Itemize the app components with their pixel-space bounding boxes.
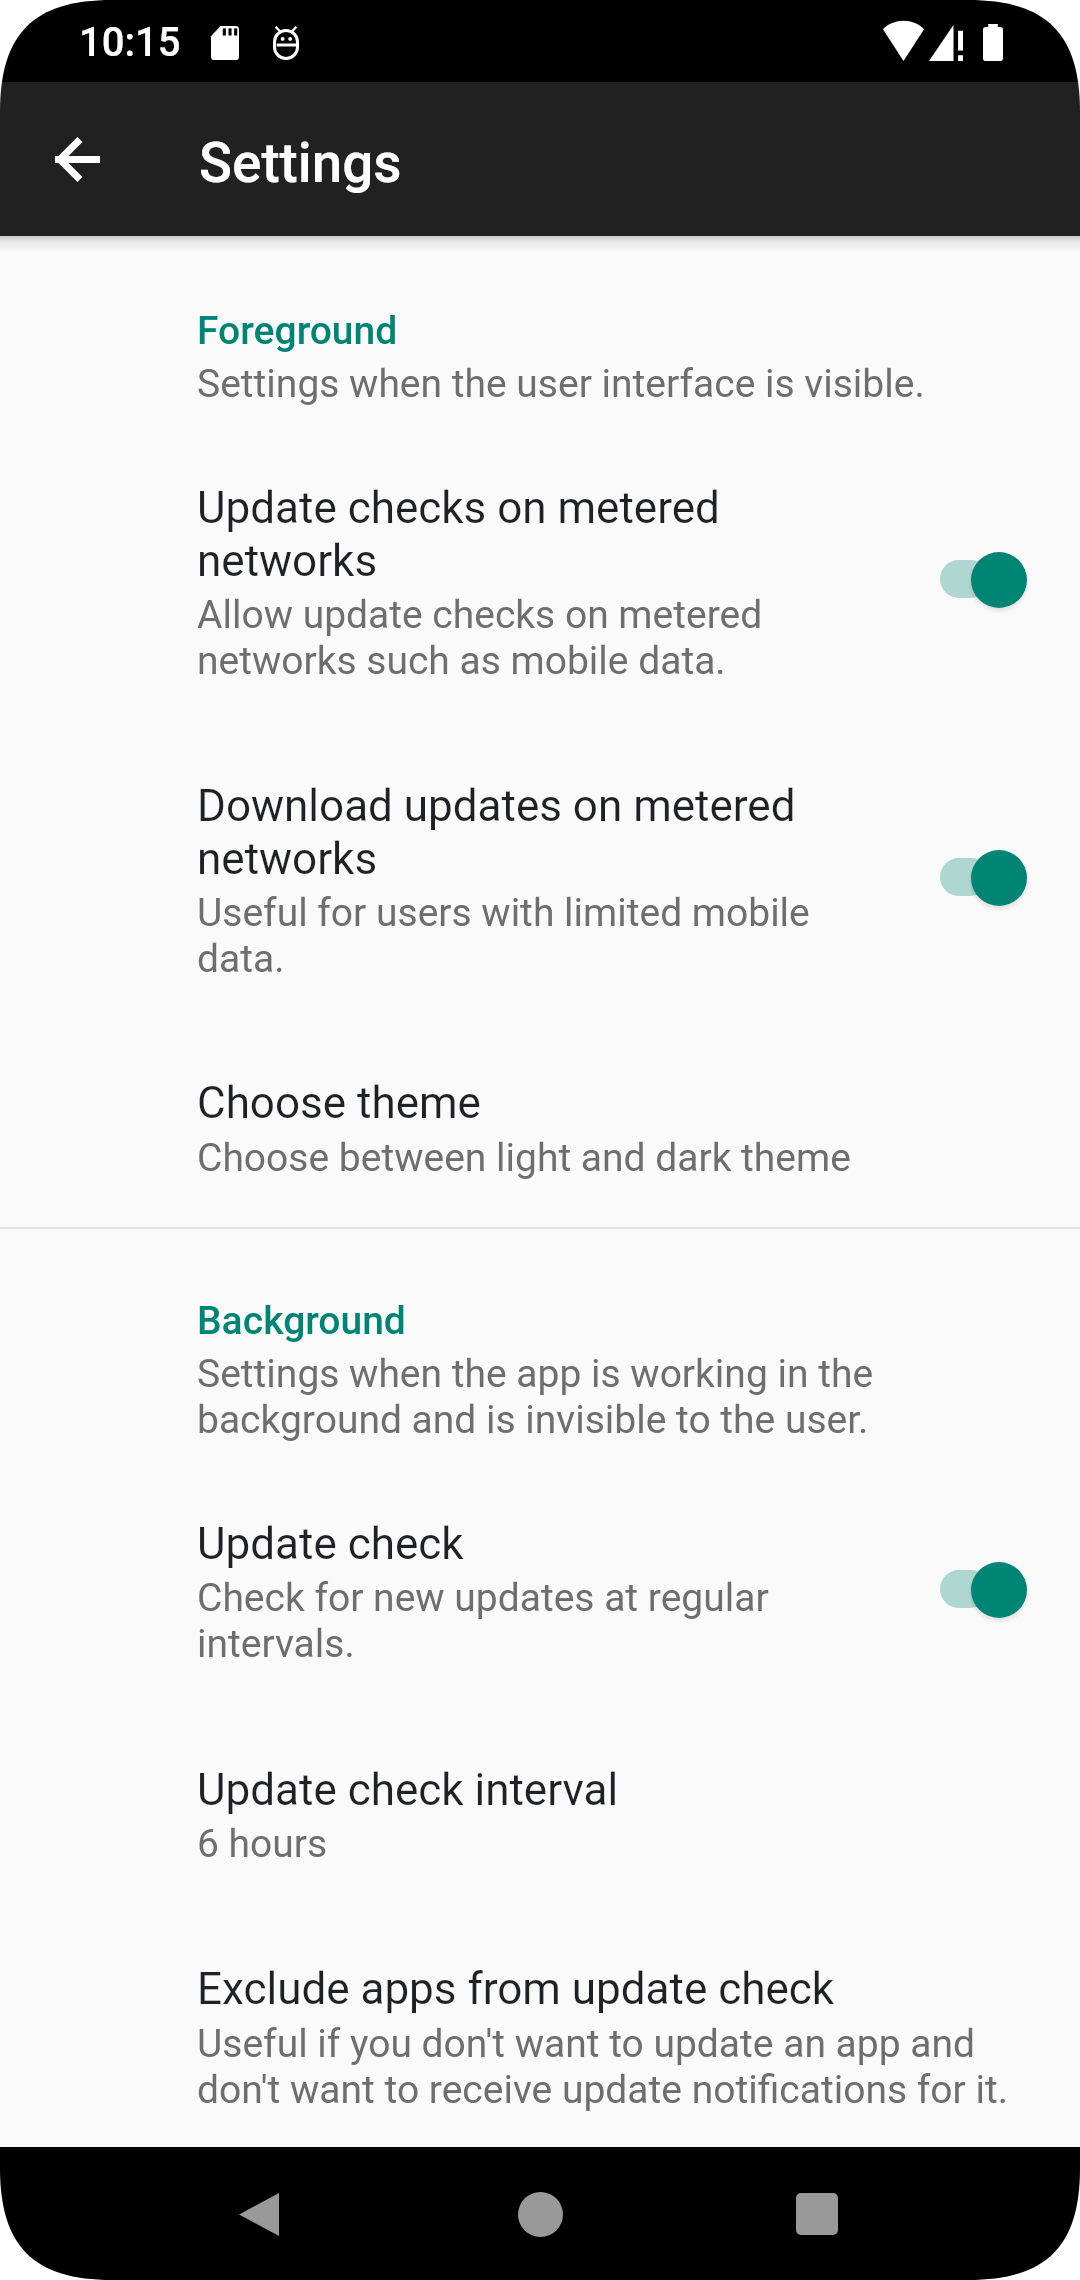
- staticText: Settings: [199, 131, 402, 195]
- staticText: Update check: [197, 1517, 464, 1570]
- button[interactable]: Toggle setting: [908, 822, 1048, 934]
- staticText: Exclude apps from update check: [197, 1962, 835, 2015]
- button[interactable]: Update checks on metered networks: [0, 442, 1080, 730]
- button[interactable]: Update check: [0, 1478, 1080, 1712]
- button[interactable]: Navigate up: [22, 104, 132, 214]
- staticText: Useful if you don't want to update an ap…: [197, 2021, 1008, 2113]
- staticText: 6 hours: [197, 1821, 328, 1867]
- button[interactable]: Choose theme: [0, 1038, 1080, 1218]
- staticText: Background: [197, 1298, 406, 1344]
- button[interactable]: Exclude apps from update check: [0, 1924, 1080, 2134]
- button[interactable]: Back: [219, 2174, 299, 2254]
- button[interactable]: Recent apps: [777, 2174, 857, 2254]
- staticText: Foreground: [197, 308, 398, 354]
- staticText: 10:15: [79, 19, 181, 66]
- button[interactable]: Download updates on metered networks: [0, 740, 1080, 1028]
- staticText: Update check interval: [197, 1763, 619, 1816]
- staticText: Settings when the user interface is visi…: [197, 361, 925, 407]
- staticText: Check for new updates at regular interva…: [197, 1575, 769, 1667]
- staticText: Settings when the app is working in the …: [197, 1351, 874, 1443]
- staticText: Download updates on metered networks: [197, 779, 796, 885]
- staticText: Allow update checks on metered networks …: [197, 592, 763, 684]
- staticText: Update checks on metered networks: [197, 481, 720, 587]
- staticText: Choose theme: [197, 1076, 481, 1129]
- staticText: Choose between light and dark theme: [197, 1135, 851, 1181]
- button[interactable]: Toggle setting: [908, 524, 1048, 636]
- staticText: Useful for users with limited mobile dat…: [197, 890, 810, 982]
- button[interactable]: Toggle setting: [908, 1534, 1048, 1646]
- button[interactable]: Update check interval: [0, 1724, 1080, 1904]
- button[interactable]: Home: [500, 2174, 580, 2254]
